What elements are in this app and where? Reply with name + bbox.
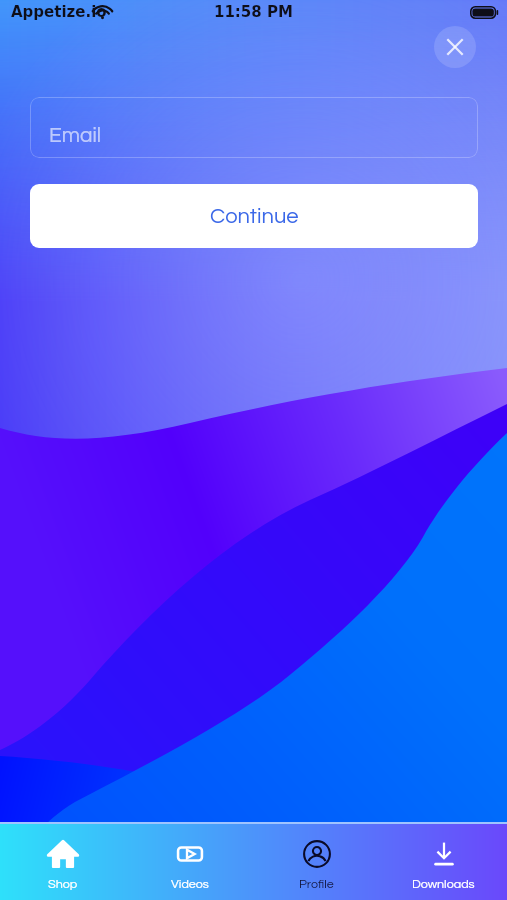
button[interactable]: Shop [0,824,126,900]
staticText: Videos [171,878,209,891]
button[interactable]: Close [434,26,476,68]
button[interactable]: Videos [126,824,253,900]
staticText: Shop [48,878,78,891]
staticText: Email [49,125,102,147]
staticText: Profile [299,878,334,891]
button[interactable]: Profile [253,824,380,900]
staticText: 11:58 PM [214,3,293,20]
button[interactable]: Email [30,97,478,158]
staticText: Downloads [412,878,475,891]
button[interactable]: Continue [30,184,478,248]
button[interactable]: Downloads [380,824,507,900]
staticText: Continue [210,205,299,228]
staticText: Appetize.io [11,3,107,20]
